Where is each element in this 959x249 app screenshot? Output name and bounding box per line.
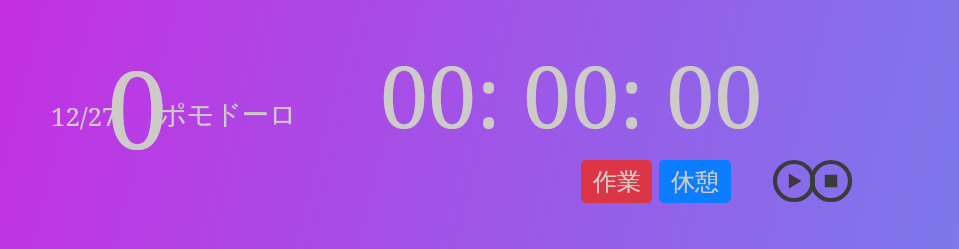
staticText: ポモドーロ: [159, 98, 297, 132]
staticText: 休憩: [671, 167, 719, 197]
button[interactable]: Stop timer: [810, 160, 852, 202]
button[interactable]: 作業: [581, 160, 652, 203]
button[interactable]: Start timer: [773, 160, 815, 202]
staticText: 0: [107, 34, 168, 181]
button[interactable]: 休憩: [659, 160, 731, 203]
staticText: 作業: [593, 167, 641, 197]
staticText: 00: 00: 00: [380, 36, 763, 140]
staticText: 12/27: [51, 98, 117, 133]
